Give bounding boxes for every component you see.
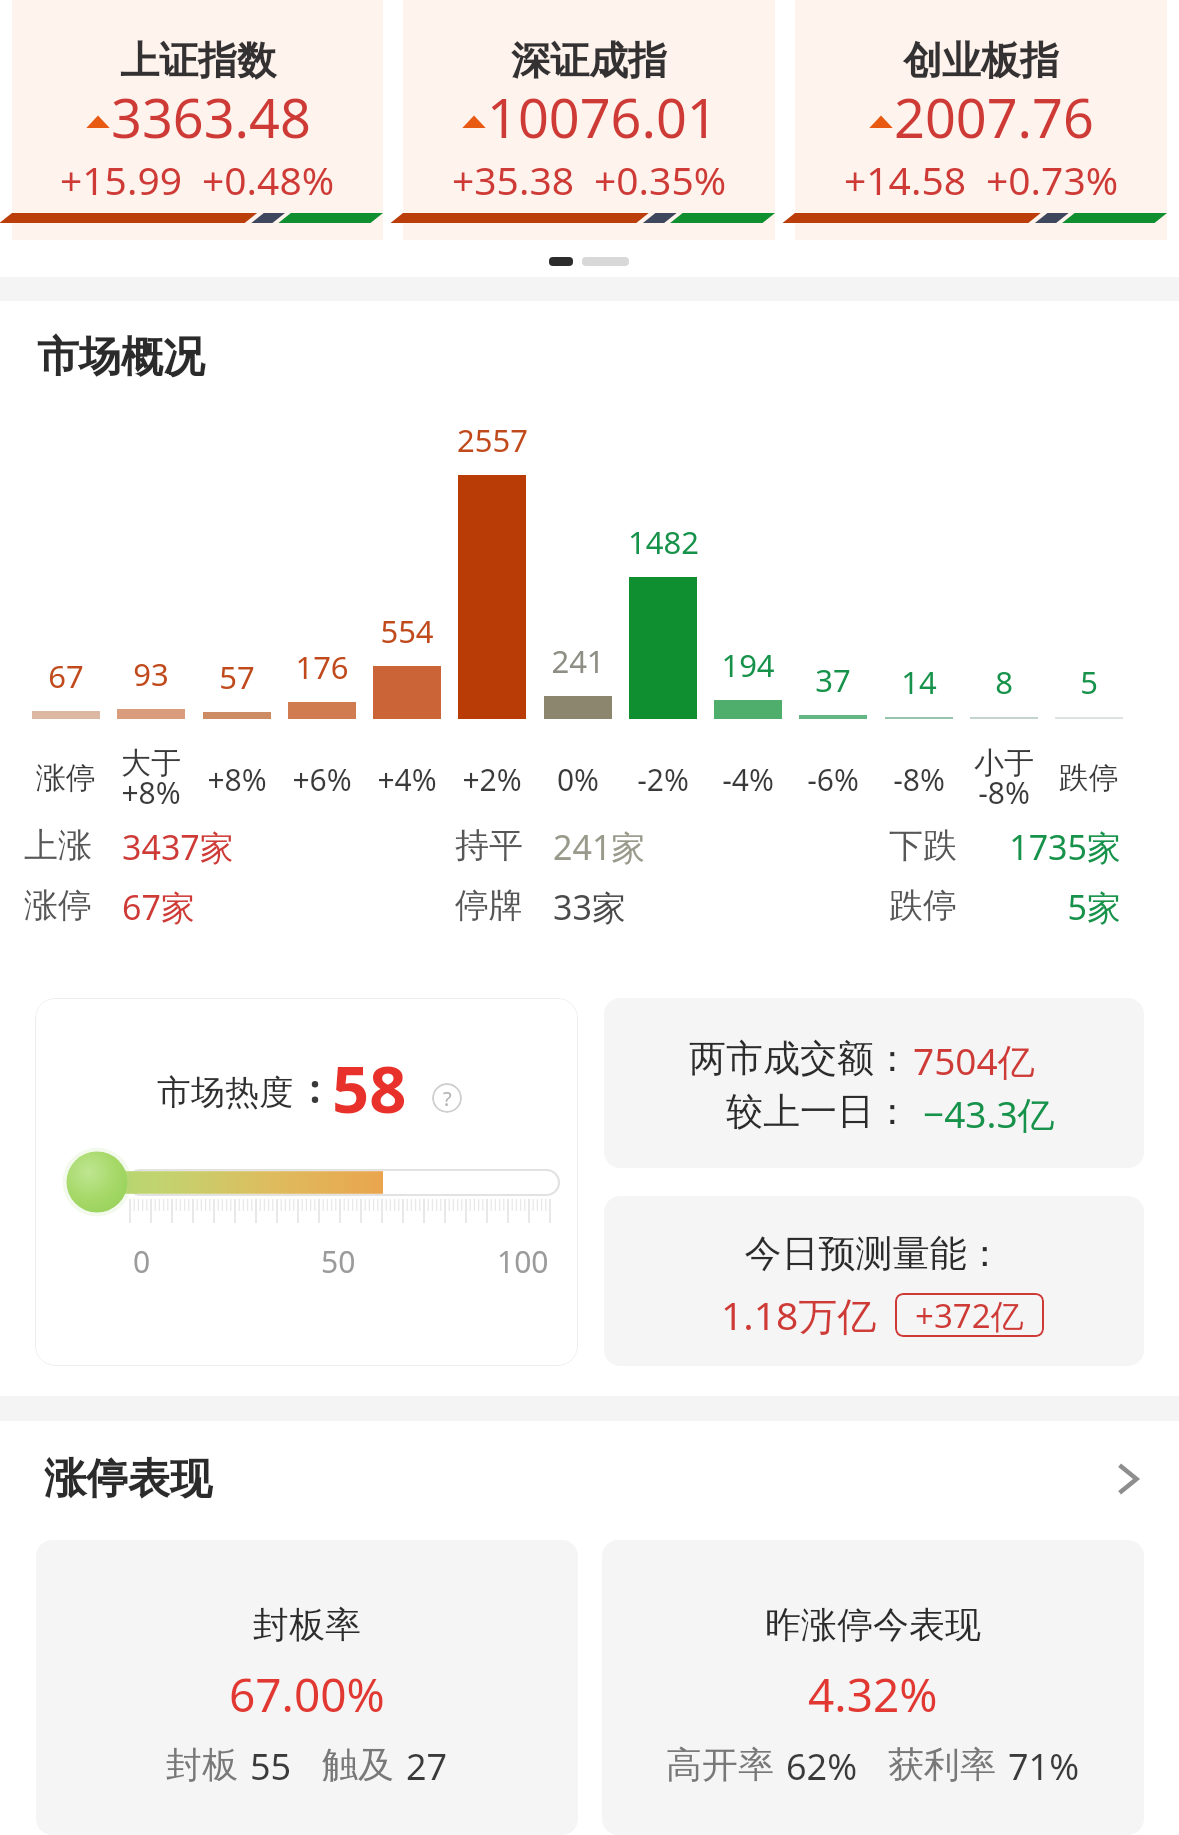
button[interactable]: 今日预测量能： xyxy=(604,1196,1144,1366)
staticText: -6% xyxy=(783,759,883,800)
button[interactable]: 涨停表现 xyxy=(44,1440,1143,1518)
button[interactable]: 市场热度 xyxy=(35,998,578,1366)
staticText: 10076.01 xyxy=(487,80,718,154)
staticText: 创业板指 xyxy=(903,36,1059,85)
button[interactable]: 两市成交额： xyxy=(604,998,1144,1168)
staticText: 5 xyxy=(1080,661,1098,703)
staticText: -4% xyxy=(698,759,798,800)
staticText: 停牌 xyxy=(455,884,523,927)
staticText: 33家 xyxy=(553,884,626,930)
staticText: 37 xyxy=(815,659,851,701)
staticText: 62% xyxy=(786,1742,858,1791)
staticText: 涨停 xyxy=(24,884,92,927)
staticText: ? xyxy=(443,1085,452,1112)
staticText: 55 xyxy=(250,1742,292,1791)
staticText: +0.48% xyxy=(202,153,335,206)
staticText: 上证指数 xyxy=(120,36,276,85)
staticText: 封板率 xyxy=(253,1602,361,1647)
staticText: 2557 xyxy=(457,419,528,461)
staticText: 93 xyxy=(133,653,169,695)
staticText: -2% xyxy=(613,759,713,800)
button[interactable]: Help xyxy=(432,1083,462,1113)
staticText: 3437家 xyxy=(122,824,234,870)
staticText: 涨停表现 xyxy=(44,1453,212,1506)
staticText: 小于 xyxy=(954,744,1054,782)
staticText: 两市成交额： xyxy=(604,1035,911,1082)
staticText: 57 xyxy=(219,656,255,698)
staticText: +14.58 xyxy=(844,153,966,206)
staticText: 71% xyxy=(1008,1742,1080,1791)
staticText: 市场热度 xyxy=(157,1071,293,1114)
staticText: 高开率 xyxy=(666,1742,774,1787)
staticText: 27 xyxy=(406,1742,448,1791)
staticText: 跌停 xyxy=(889,884,957,927)
button[interactable]: 上证指数 xyxy=(12,0,383,240)
staticText: +8% xyxy=(101,772,201,813)
staticText: 1735家 xyxy=(821,824,1121,870)
staticText: 2007.76 xyxy=(894,80,1094,154)
staticText: 241 xyxy=(551,640,605,682)
staticText: 241家 xyxy=(553,824,646,870)
staticText: 昨涨停今表现 xyxy=(765,1602,981,1647)
staticText: +8% xyxy=(187,759,287,800)
staticText: 14 xyxy=(901,661,937,703)
staticText: 触及 xyxy=(322,1742,394,1787)
staticText: -8% xyxy=(869,759,969,800)
staticText: 67.00% xyxy=(229,1663,385,1726)
staticText: 554 xyxy=(380,610,434,652)
staticText: +15.99 xyxy=(60,153,182,206)
staticText: 5家 xyxy=(821,884,1121,930)
staticText: 深证成指 xyxy=(511,36,667,85)
staticText: 194 xyxy=(721,644,775,686)
button[interactable]: 昨涨停今表现 xyxy=(602,1540,1144,1835)
staticText: 跌停 xyxy=(1039,759,1139,797)
staticText: 0 xyxy=(133,1241,151,1282)
staticText: 1482 xyxy=(628,521,699,563)
staticText: +35.38 xyxy=(452,153,574,206)
staticText: 67家 xyxy=(122,884,195,930)
staticText: 3363.48 xyxy=(111,80,311,154)
staticText: 市场概况 xyxy=(37,331,205,384)
staticText: 涨停 xyxy=(16,759,116,797)
button[interactable]: 创业板指 xyxy=(795,0,1167,240)
staticText: -8% xyxy=(954,772,1054,813)
staticText: 8 xyxy=(995,661,1013,703)
staticText: 1.18万亿 xyxy=(721,1288,877,1341)
staticText: +2% xyxy=(442,759,542,800)
staticText: 今日预测量能： xyxy=(604,1230,1144,1277)
staticText: +4% xyxy=(357,759,457,800)
staticText: 58 xyxy=(332,1044,407,1133)
staticText: 4.32% xyxy=(808,1663,938,1726)
staticText: 封板 xyxy=(166,1742,238,1787)
button[interactable]: 封板率 xyxy=(36,1540,578,1835)
button[interactable]: 深证成指 xyxy=(403,0,775,240)
staticText: +372亿 xyxy=(915,1293,1024,1337)
staticText: 176 xyxy=(295,646,349,688)
staticText: +6% xyxy=(272,759,372,800)
staticText: 7504亿 xyxy=(913,1035,1035,1086)
staticText: 获利率 xyxy=(888,1742,996,1787)
staticText: 67 xyxy=(48,655,84,697)
staticText: 下跌 xyxy=(889,824,957,867)
staticText: +0.73% xyxy=(986,153,1119,206)
staticText: 100 xyxy=(497,1241,549,1282)
staticText: 较上一日： xyxy=(604,1088,911,1135)
staticText: 大于 xyxy=(101,744,201,782)
staticText: 上涨 xyxy=(24,824,92,867)
staticText: 50 xyxy=(321,1241,356,1282)
staticText: 0% xyxy=(528,759,628,800)
staticText: 持平 xyxy=(455,824,523,867)
staticText: −43.3亿 xyxy=(923,1088,1055,1139)
staticText: +0.35% xyxy=(594,153,727,206)
